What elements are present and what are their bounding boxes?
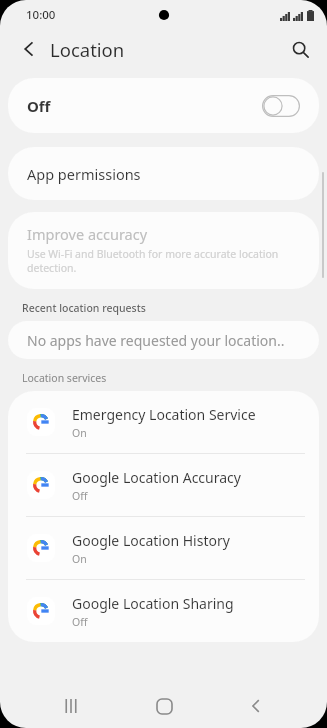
- staticText: Off: [27, 96, 51, 116]
- button[interactable]: Recent apps: [54, 689, 88, 723]
- button[interactable]: Google Location Sharing: [8, 580, 319, 642]
- staticText: On: [72, 426, 87, 440]
- button[interactable]: Google Location History: [8, 517, 319, 579]
- staticText: Off: [72, 489, 88, 503]
- staticText: No apps have requested your location..: [27, 331, 285, 350]
- button[interactable]: Improve accuracy: [8, 212, 319, 289]
- staticText: Google Location Sharing: [72, 594, 234, 613]
- staticText: On: [72, 552, 87, 566]
- staticText: Use Wi-Fi and Bluetooth for more accurat…: [27, 247, 305, 275]
- staticText: 10:00: [26, 7, 56, 23]
- staticText: Improve accuracy: [27, 224, 148, 244]
- staticText: Off: [72, 615, 88, 629]
- staticText: Recent location requests: [22, 301, 146, 315]
- staticText: Google Location Accuracy: [72, 468, 241, 487]
- button[interactable]: Back: [12, 32, 46, 66]
- button[interactable]: Back: [239, 689, 273, 723]
- button[interactable]: Home: [147, 689, 181, 723]
- button[interactable]: Off: [8, 78, 319, 133]
- staticText: Emergency Location Service: [72, 405, 256, 424]
- staticText: App permissions: [27, 164, 141, 184]
- button[interactable]: App permissions: [8, 147, 319, 200]
- staticText: Location services: [22, 371, 107, 385]
- button[interactable]: Search: [283, 32, 317, 66]
- button[interactable]: Emergency Location Service: [8, 391, 319, 453]
- staticText: Google Location History: [72, 531, 230, 550]
- staticText: Location: [50, 37, 125, 62]
- button[interactable]: Google Location Accuracy: [8, 454, 319, 516]
